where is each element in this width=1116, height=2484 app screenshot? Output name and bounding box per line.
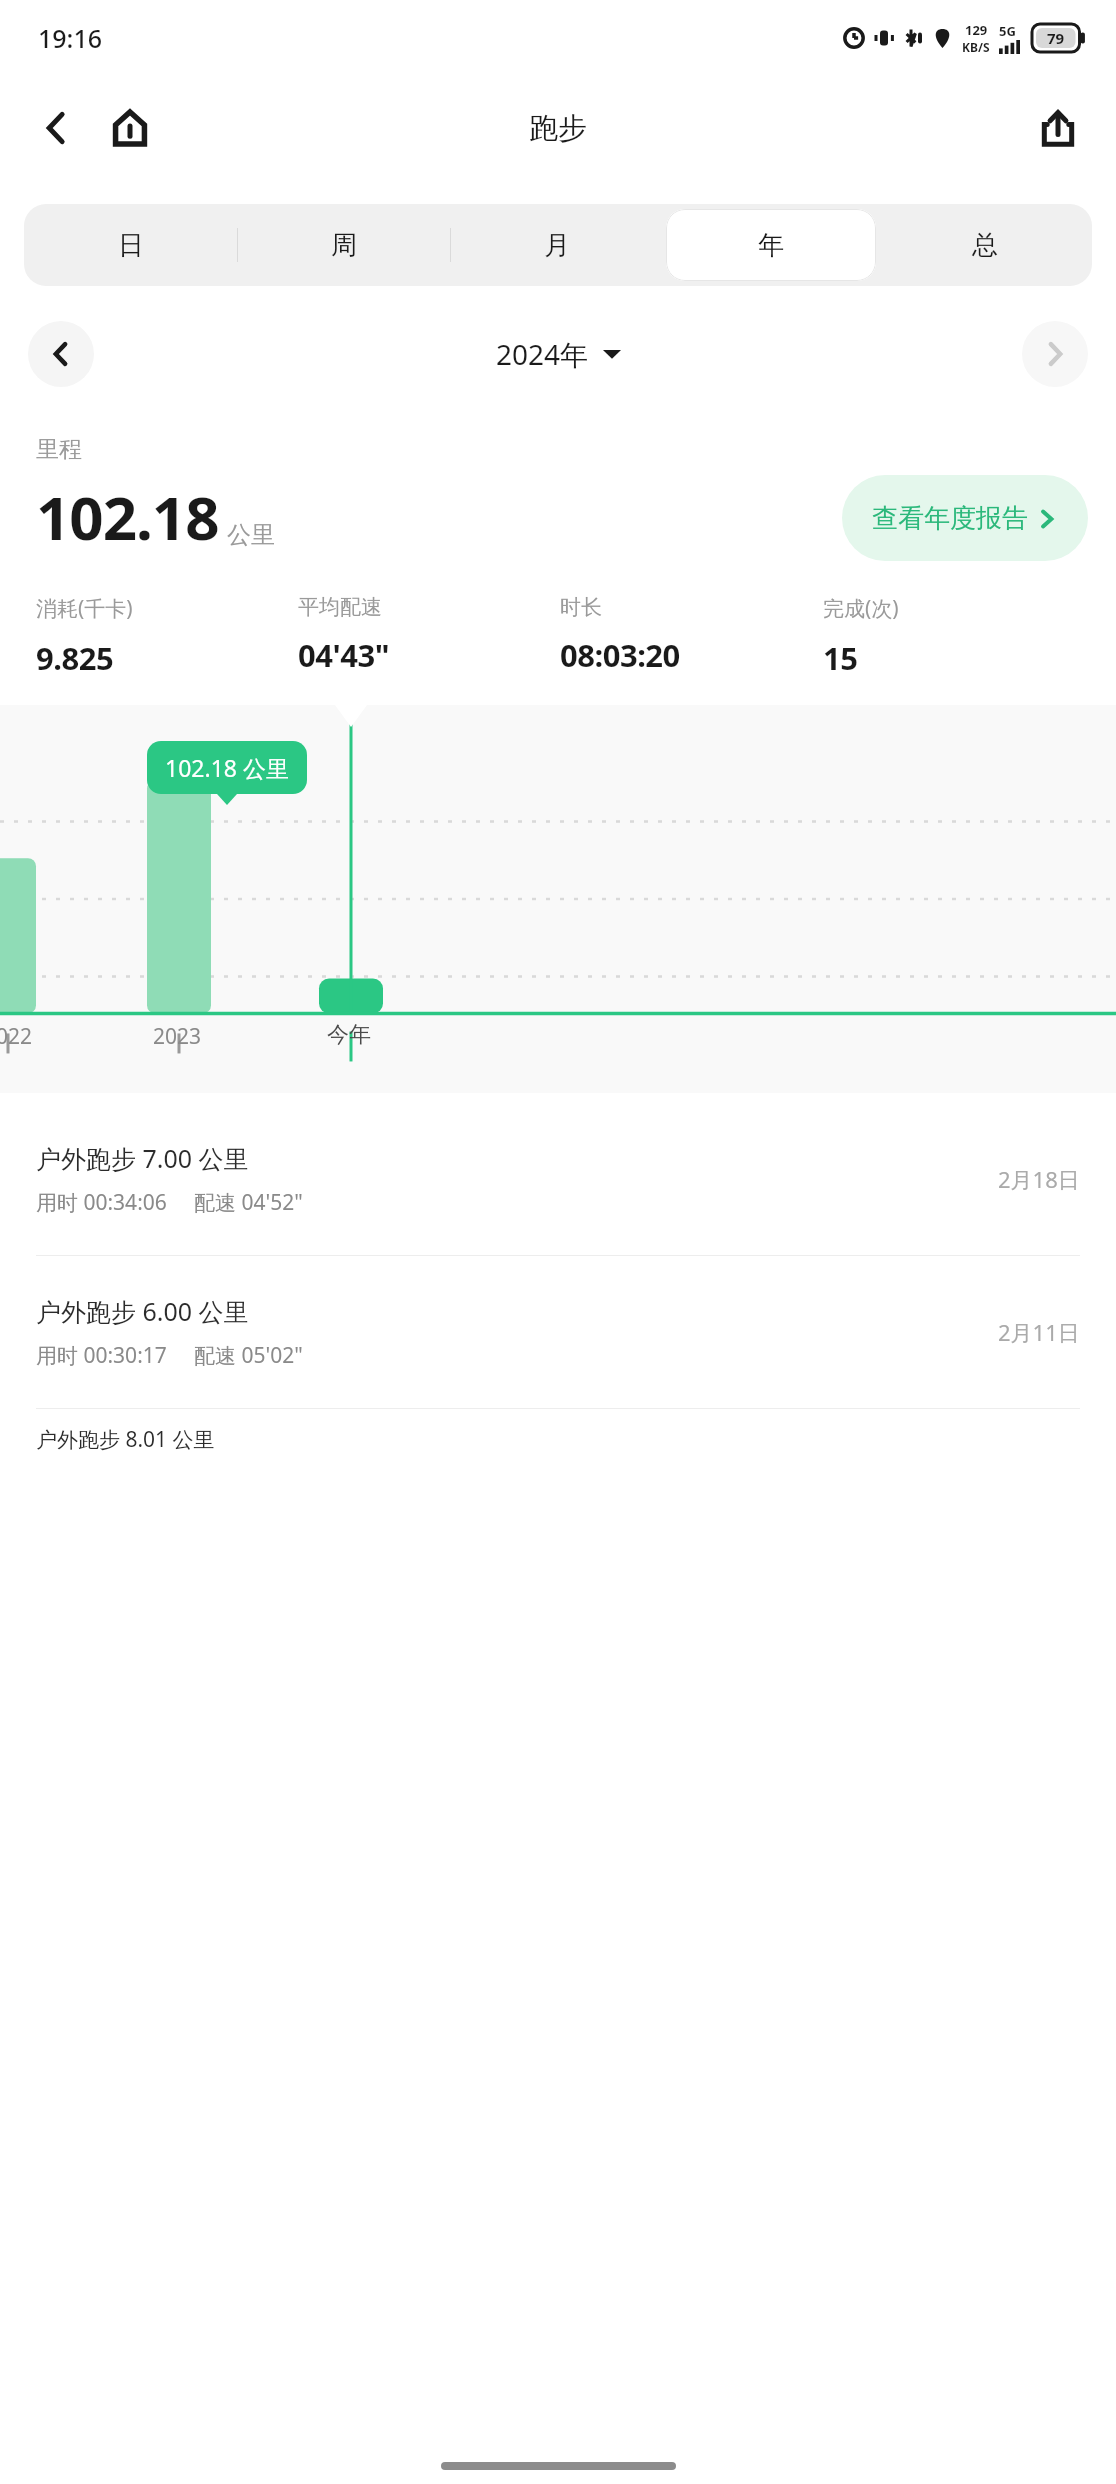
button[interactable]: Next year (1022, 321, 1088, 387)
staticText: 平均配速 (298, 594, 382, 620)
staticText: 总 (972, 229, 998, 262)
staticText: 周 (331, 229, 357, 262)
staticText: 15 (823, 637, 858, 679)
staticText: 2月18日 (998, 1164, 1080, 1194)
staticText: 2023 (153, 1022, 202, 1051)
staticText: 户外跑步 7.00 公里 (36, 1141, 249, 1175)
button[interactable]: 年 (664, 204, 878, 286)
staticText: 月 (544, 229, 570, 262)
button[interactable]: 月 (450, 204, 664, 286)
button[interactable]: 日 (24, 204, 237, 286)
staticText: 户外跑步 8.01 公里 (36, 1425, 215, 1454)
staticText: 79 (1047, 28, 1065, 48)
staticText: 跑步 (529, 110, 587, 147)
staticText: 时长 (560, 594, 602, 620)
button[interactable]: 周 (237, 204, 450, 286)
button[interactable]: Share (1028, 98, 1088, 158)
staticText: 户外跑步 6.00 公里 (36, 1294, 249, 1328)
button[interactable]: 户外跑步 6.00 公里 (0, 1256, 1116, 1408)
staticText: 19:16 (38, 21, 103, 55)
button[interactable]: 户外跑步 7.00 公里 (0, 1103, 1116, 1255)
staticText: 102.18 公里 (165, 752, 289, 783)
staticText: 129 (965, 21, 988, 39)
staticText: 里程 (36, 435, 82, 464)
staticText: 08:03:20 (560, 634, 680, 676)
staticText: 日 (118, 229, 144, 262)
button[interactable]: 总 (878, 204, 1092, 286)
staticText: 公里 (227, 520, 275, 550)
staticText: 今年 (327, 1021, 371, 1049)
staticText: 9.825 (36, 637, 114, 679)
staticText: 用时 00:34:06 配速 04'52" (36, 1188, 303, 1217)
button[interactable]: Back (26, 98, 86, 158)
staticText: 2024年 (496, 335, 589, 373)
button[interactable]: Home (100, 98, 160, 158)
staticText: 年 (758, 229, 784, 262)
staticText: 消耗(千卡) (36, 594, 133, 623)
staticText: 用时 00:30:17 配速 05'02" (36, 1341, 303, 1370)
button[interactable]: Previous year (28, 321, 94, 387)
staticText: 04'43" (298, 634, 390, 676)
staticText: 2022 (0, 1022, 33, 1051)
staticText: 完成(次) (823, 594, 899, 623)
staticText: 查看年度报告 (872, 502, 1028, 535)
staticText: 102.18 (36, 476, 219, 558)
button[interactable]: 查看年度报告 (842, 475, 1088, 561)
staticText: KB/S (962, 39, 990, 55)
staticText: 2月11日 (998, 1317, 1080, 1347)
staticText: 5G (999, 22, 1016, 40)
